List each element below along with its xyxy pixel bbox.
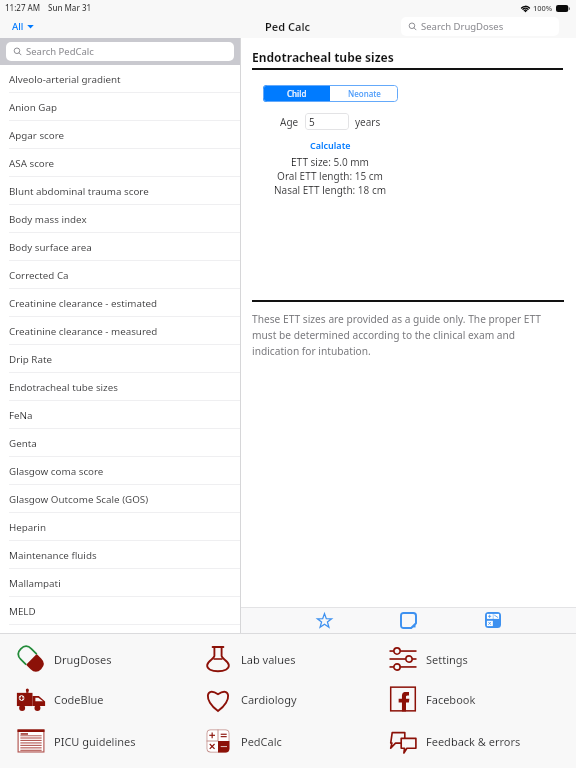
staticText: Body mass index (9, 213, 87, 226)
button[interactable]: Facebook (387, 683, 557, 715)
button[interactable]: Calculator (481, 608, 505, 632)
staticText: Feedback & errors (426, 734, 521, 749)
staticText: Calculate (310, 139, 351, 151)
button[interactable]: FeNa (0, 401, 240, 429)
staticText: Glasgow Outcome Scale (GOS) (9, 493, 149, 506)
staticText: Settings (426, 652, 468, 667)
button[interactable]: PICU guidelines (15, 725, 185, 757)
button[interactable]: Blunt abdominal trauma score (0, 177, 240, 205)
button[interactable]: Lab values (202, 643, 372, 675)
button[interactable]: Corrected Ca (0, 261, 240, 289)
button[interactable]: Genta (0, 429, 240, 457)
button[interactable]: CodeBlue (15, 683, 185, 715)
button[interactable]: PedCalc (202, 725, 372, 757)
staticText: Sun Mar 31 (48, 2, 92, 13)
staticText: Alveolo-arterial gradient (9, 73, 121, 86)
button[interactable]: Creatinine clearance - measured (0, 317, 240, 345)
staticText: Apgar score (9, 129, 65, 142)
staticText: Search DrugDoses (421, 20, 504, 33)
button[interactable]: Apgar score (0, 121, 240, 149)
button[interactable]: Notes (396, 608, 420, 632)
button[interactable]: Body surface area (0, 233, 240, 261)
staticText: Drip Rate (9, 353, 52, 366)
button[interactable]: Maintenance fluids (0, 541, 240, 569)
button[interactable]: Creatinine clearance - estimated (0, 289, 240, 317)
staticText: PICU guidelines (54, 734, 136, 749)
staticText: Facebook (426, 692, 476, 707)
staticText: Maintenance fluids (9, 549, 97, 562)
staticText: These ETT sizes are provided as a guide … (252, 312, 564, 358)
staticText: Search PedCalc (26, 45, 94, 58)
staticText: Glasgow coma score (9, 465, 104, 478)
staticText: Cardiology (241, 692, 297, 707)
button[interactable]: Drip Rate (0, 345, 240, 373)
staticText: ASA score (9, 157, 55, 170)
staticText: Corrected Ca (9, 269, 69, 282)
button[interactable]: Endotracheal tube sizes (0, 373, 240, 401)
staticText: Ped Calc (265, 19, 311, 34)
button[interactable]: 5 (305, 113, 349, 130)
button[interactable]: Body mass index (0, 205, 240, 233)
staticText: Endotracheal tube sizes (252, 49, 394, 65)
staticText: Anion Gap (9, 101, 58, 114)
staticText: 100% (533, 3, 553, 13)
staticText: DrugDoses (54, 652, 112, 667)
staticText: CodeBlue (54, 692, 104, 707)
staticText: Body surface area (9, 241, 92, 254)
staticText: Neonate (348, 88, 381, 99)
button[interactable]: Child (263, 85, 330, 102)
staticText: Age (280, 115, 299, 129)
button[interactable]: Mallampati (0, 569, 240, 597)
button[interactable]: Settings (387, 643, 557, 675)
staticText: ETT size: 5.0 mm Oral ETT length: 15 cm … (241, 155, 419, 197)
staticText: Lab values (241, 652, 296, 667)
staticText: 5 (309, 115, 315, 129)
button[interactable]: DrugDoses (15, 643, 185, 675)
staticText: FeNa (9, 409, 33, 422)
staticText: PedCalc (241, 734, 282, 749)
staticText: All (12, 20, 24, 33)
button[interactable]: Alveolo-arterial gradient (0, 65, 240, 93)
staticText: Creatinine clearance - measured (9, 325, 158, 338)
button[interactable]: Heparin (0, 513, 240, 541)
staticText: Child (287, 88, 307, 99)
button[interactable]: ASA score (0, 149, 240, 177)
button[interactable]: Favorite (312, 608, 336, 632)
button[interactable]: Glasgow Outcome Scale (GOS) (0, 485, 240, 513)
staticText: Endotracheal tube sizes (9, 381, 118, 394)
staticText: Heparin (9, 521, 46, 534)
button[interactable]: Feedback & errors (387, 725, 557, 757)
button[interactable]: Anion Gap (0, 93, 240, 121)
staticText: 11:27 AM (5, 2, 41, 13)
staticText: Creatinine clearance - estimated (9, 297, 157, 310)
staticText: years (355, 115, 381, 129)
button[interactable]: All (10, 18, 36, 35)
button[interactable]: Calculate (302, 137, 359, 153)
button[interactable]: Cardiology (202, 683, 372, 715)
button[interactable]: Glasgow coma score (0, 457, 240, 485)
button[interactable]: Neonate (330, 85, 398, 102)
staticText: Genta (9, 437, 37, 450)
button[interactable]: Search PedCalc (6, 42, 234, 61)
button[interactable]: MELD (0, 597, 240, 625)
staticText: Mallampati (9, 577, 61, 590)
button[interactable]: Search DrugDoses (401, 17, 559, 36)
staticText: Blunt abdominal trauma score (9, 185, 149, 198)
staticText: MELD (9, 605, 36, 618)
